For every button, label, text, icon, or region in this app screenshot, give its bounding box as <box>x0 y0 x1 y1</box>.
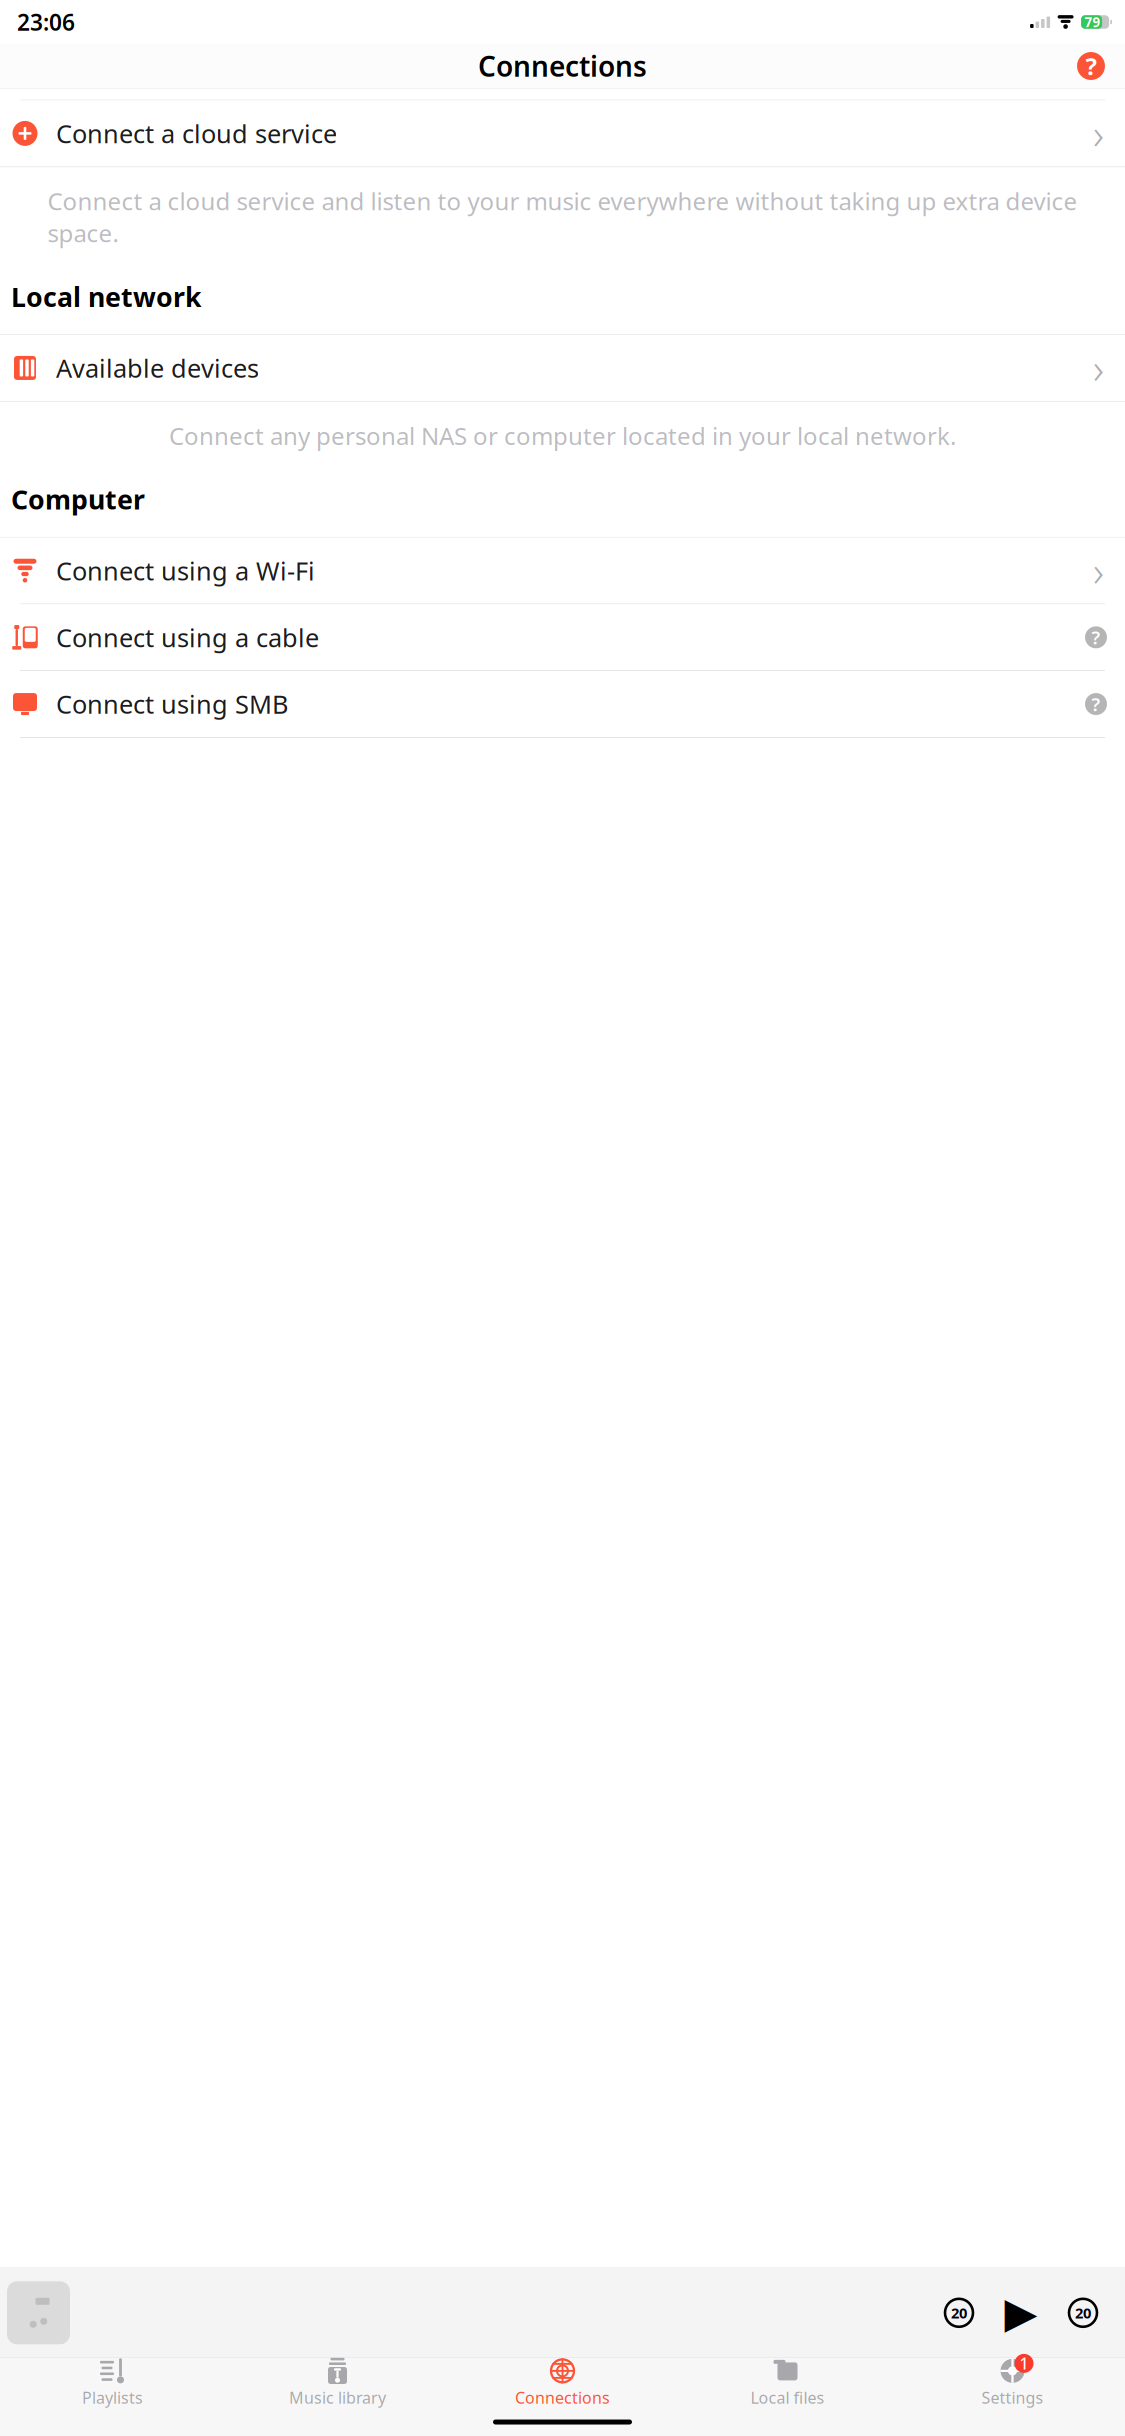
button[interactable]: Connect using a Wi-Fi <box>0 538 1125 604</box>
button[interactable]: Connect using a cable <box>0 604 1125 670</box>
staticText: Local files <box>750 2387 824 2408</box>
button[interactable]: Skip back 20 seconds <box>939 2293 979 2333</box>
staticText: Connect a cloud service <box>56 117 337 150</box>
staticText: 20 <box>1075 2303 1091 2323</box>
staticText: › <box>1093 543 1104 598</box>
staticText: › <box>1093 340 1104 395</box>
button[interactable]: 1 <box>900 2358 1125 2408</box>
staticText: ? <box>1085 50 1096 82</box>
staticText: Music library <box>289 2387 386 2408</box>
staticText: ? <box>1091 625 1100 650</box>
staticText: 23:06 <box>17 7 75 37</box>
button[interactable]: Playlists <box>0 2358 225 2408</box>
staticText: Settings <box>981 2387 1043 2408</box>
staticText: Connections <box>515 2387 610 2408</box>
staticText: Connect a cloud service and listen to yo… <box>47 185 1077 249</box>
button[interactable]: Connections <box>450 2358 675 2408</box>
staticText: ▶ <box>1004 2289 1037 2337</box>
button[interactable]: Connect using SMB <box>0 671 1125 737</box>
staticText: Connect using SMB <box>56 687 288 721</box>
staticText: Available devices <box>56 351 259 385</box>
staticText: 1 <box>1019 2353 1028 2374</box>
staticText: Computer <box>11 481 145 517</box>
staticText: › <box>1093 106 1104 161</box>
staticText: Connections <box>478 47 647 85</box>
button[interactable]: Now playing artwork <box>7 2281 70 2344</box>
staticText: Connect any personal NAS or computer loc… <box>169 420 956 452</box>
staticText: 79 <box>1085 13 1101 31</box>
staticText: ? <box>1091 692 1100 716</box>
button[interactable]: Connect a cloud service <box>0 100 1125 166</box>
button[interactable]: Skip forward 20 seconds <box>1063 2293 1103 2333</box>
staticText: Connect using a cable <box>56 620 319 654</box>
staticText: 20 <box>951 2303 967 2323</box>
staticText: Playlists <box>82 2387 143 2408</box>
button[interactable]: Music library <box>225 2358 450 2408</box>
button[interactable]: Play <box>1001 2291 1041 2335</box>
staticText: Local network <box>11 279 202 314</box>
button[interactable]: Available devices <box>0 335 1125 401</box>
button[interactable]: Help <box>1074 49 1108 83</box>
staticText: Connect using a Wi-Fi <box>56 554 315 587</box>
button[interactable]: Local files <box>675 2358 900 2408</box>
